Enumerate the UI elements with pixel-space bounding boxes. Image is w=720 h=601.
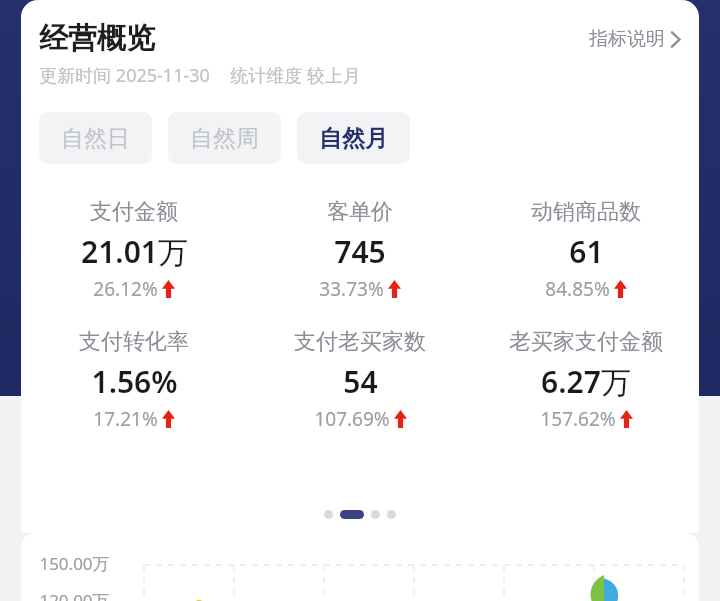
staticText: 客单价 — [327, 198, 393, 226]
staticText: 17.21% — [93, 406, 158, 432]
staticText: 33.73% — [319, 276, 384, 302]
staticText: 支付老买家数 — [294, 328, 426, 356]
staticText: 支付金额 — [90, 198, 178, 226]
staticText: 150.00万 — [39, 552, 110, 575]
staticText: 自然月 — [319, 124, 388, 153]
staticText: 26.12% — [93, 276, 158, 302]
button[interactable]: 自然月 — [297, 112, 410, 164]
staticText: 157.62% — [540, 406, 616, 432]
staticText: 61 — [569, 231, 604, 272]
staticText: 自然日 — [61, 124, 130, 153]
staticText: 动销商品数 — [531, 198, 641, 226]
staticText: 1.56% — [91, 361, 178, 402]
staticText: 6.27万 — [541, 361, 631, 402]
button[interactable]: 支付金额 — [21, 198, 247, 302]
staticText: 107.69% — [314, 406, 390, 432]
staticText: 745 — [334, 231, 386, 272]
button[interactable]: 指标说明 — [583, 21, 687, 57]
staticText: 统计维度 较上月 — [230, 63, 361, 88]
button[interactable]: 自然日 — [39, 112, 152, 164]
staticText: 21.01万 — [81, 231, 188, 272]
staticText: 老买家支付金额 — [509, 328, 663, 356]
button[interactable]: 支付转化率 — [21, 328, 247, 432]
staticText: 指标说明 — [589, 27, 665, 51]
staticText: 自然周 — [190, 124, 259, 153]
staticText: 120.00万 — [39, 589, 110, 601]
staticText: 支付转化率 — [79, 328, 189, 356]
staticText: 54 — [343, 361, 378, 402]
button[interactable]: 客单价 — [247, 198, 473, 302]
button[interactable]: 动销商品数 — [473, 198, 699, 302]
button[interactable]: 老买家支付金额 — [473, 328, 699, 432]
staticText: 更新时间 2025-11-30 — [39, 63, 210, 88]
button[interactable]: 自然周 — [168, 112, 281, 164]
button[interactable]: 支付老买家数 — [247, 328, 473, 432]
staticText: 84.85% — [545, 276, 610, 302]
staticText: 经营概览 — [39, 20, 155, 57]
